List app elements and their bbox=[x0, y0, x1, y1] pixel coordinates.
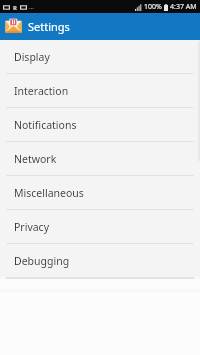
button[interactable]: Display bbox=[0, 40, 200, 74]
staticText: R bbox=[13, 4, 17, 10]
button[interactable]: Interaction bbox=[0, 74, 200, 108]
staticText: Privacy bbox=[14, 220, 50, 234]
staticText: 4:37 AM bbox=[170, 2, 197, 12]
staticText: 100% bbox=[144, 2, 162, 12]
staticText: Miscellaneous bbox=[14, 186, 84, 200]
staticText: Notifications bbox=[14, 118, 77, 132]
staticText: Debugging bbox=[14, 254, 70, 268]
button[interactable]: Debugging bbox=[0, 244, 200, 278]
other: App icon bbox=[5, 18, 22, 35]
button[interactable]: Privacy bbox=[0, 210, 200, 244]
staticText: ... bbox=[29, 3, 34, 11]
staticText: Settings bbox=[28, 19, 70, 34]
button[interactable]: Miscellaneous bbox=[0, 176, 200, 210]
button[interactable]: Notifications bbox=[0, 108, 200, 142]
button[interactable]: Network bbox=[0, 142, 200, 176]
staticText: Network bbox=[14, 152, 57, 166]
staticText: Interaction bbox=[14, 84, 69, 98]
staticText: Display bbox=[14, 50, 50, 64]
